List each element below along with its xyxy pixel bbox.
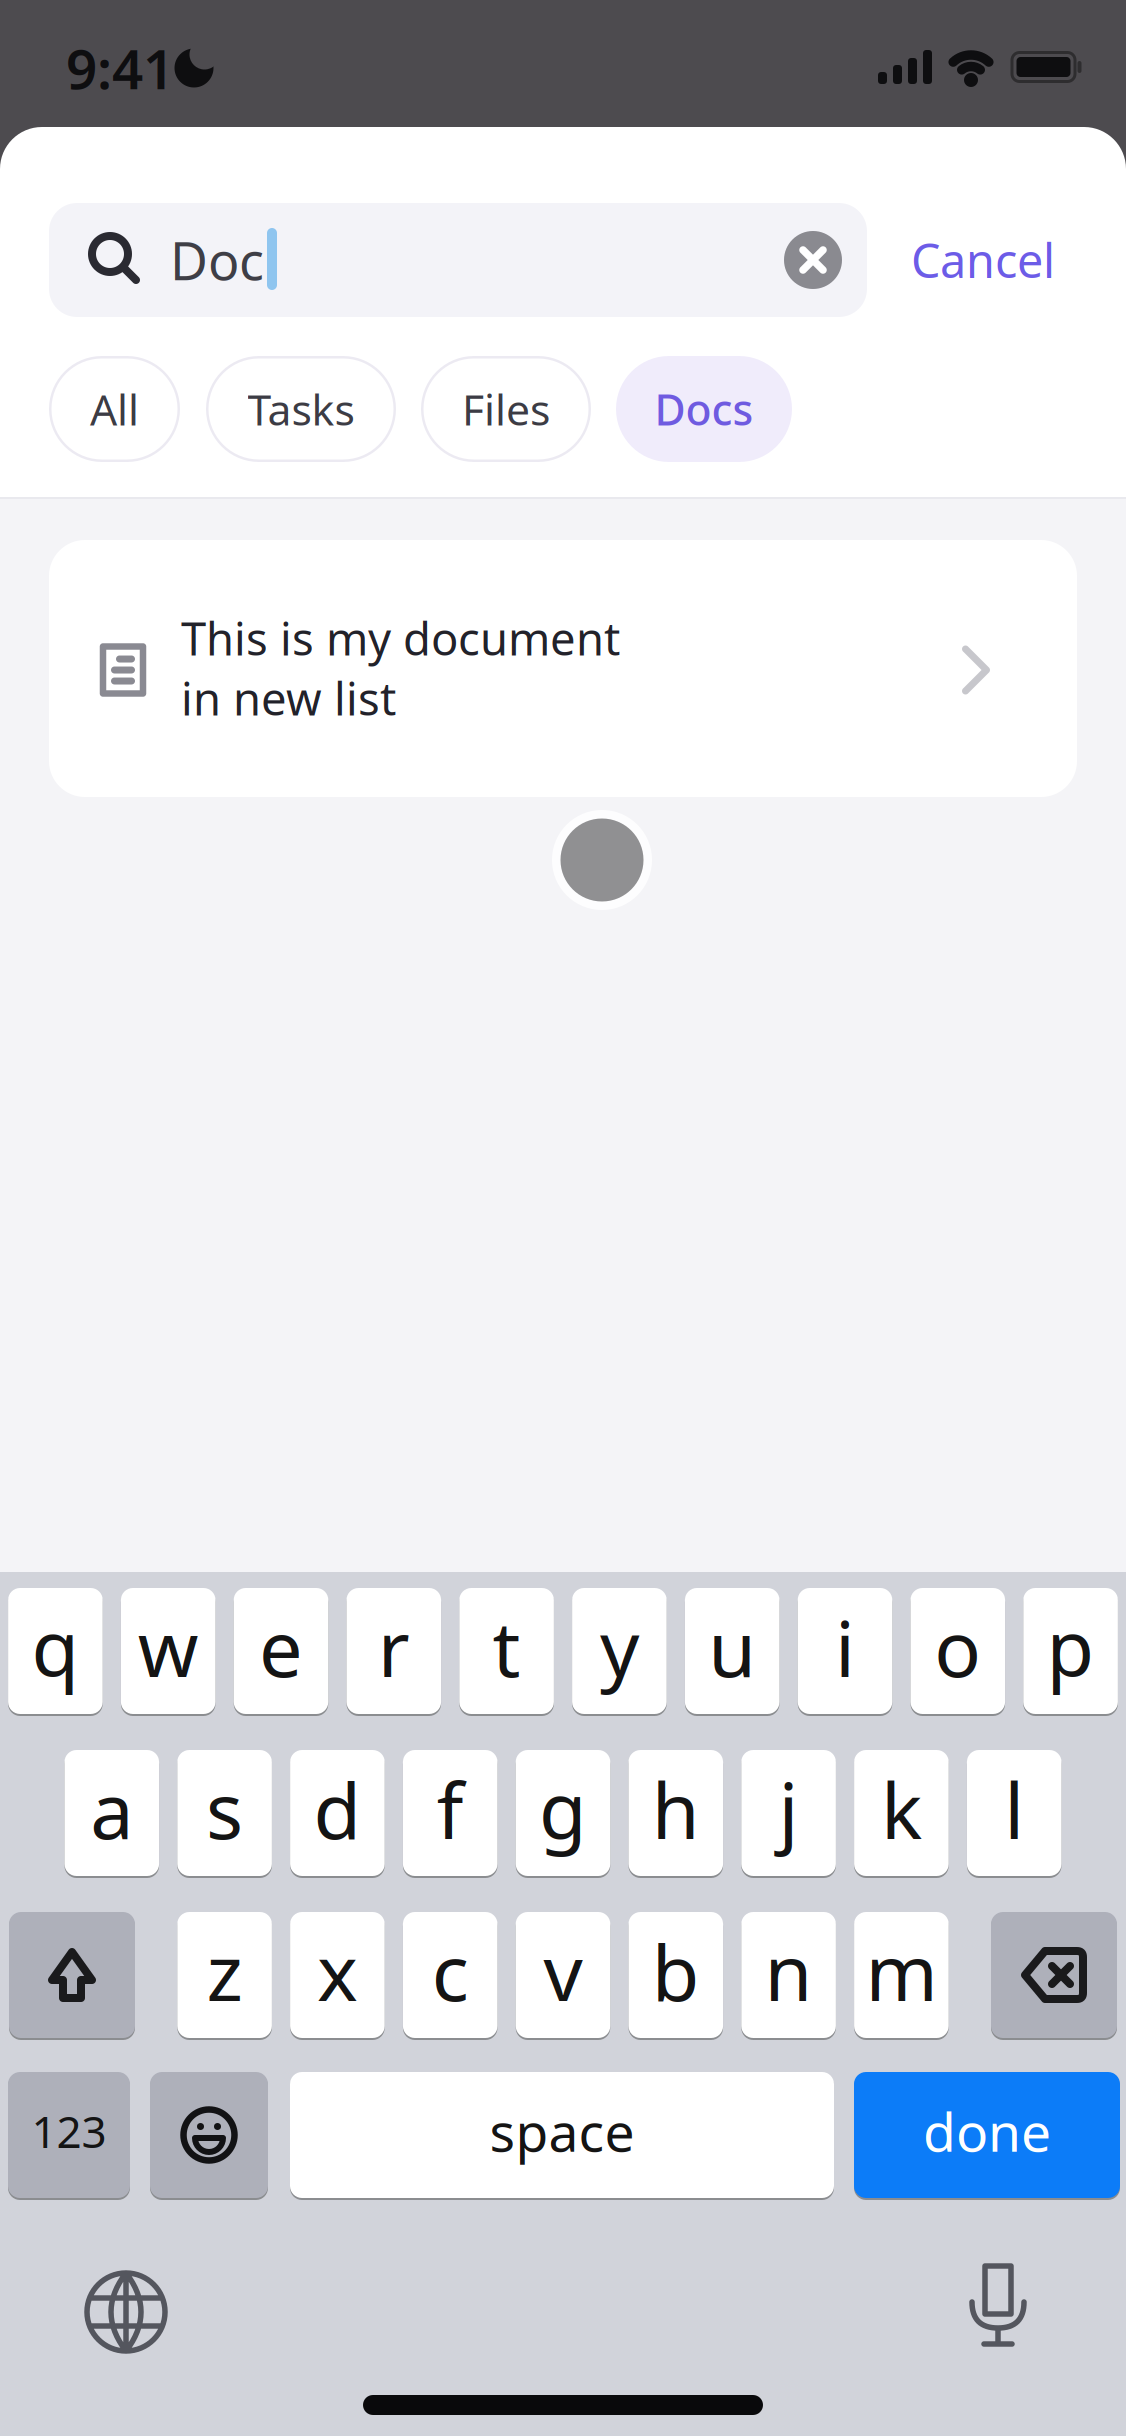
button[interactable]: m	[854, 1911, 949, 2039]
button[interactable]: x	[290, 1911, 385, 2039]
staticText: u	[708, 1596, 756, 1698]
staticText: n	[765, 1920, 813, 2022]
staticText: This is my document	[181, 608, 620, 668]
staticText: w	[138, 1596, 199, 1698]
button[interactable]: Emoji	[150, 2071, 268, 2199]
staticText: e	[259, 1596, 303, 1698]
staticText: k	[881, 1758, 922, 1860]
staticText: d	[313, 1758, 361, 1860]
button[interactable]: w	[121, 1587, 215, 1715]
staticText: l	[1004, 1758, 1024, 1860]
staticText: z	[207, 1920, 243, 2022]
staticText: 9:41	[66, 32, 174, 104]
staticText: m	[865, 1920, 937, 2022]
staticText: space	[489, 2096, 634, 2166]
button[interactable]: b	[628, 1911, 723, 2039]
button[interactable]: i	[798, 1587, 892, 1715]
staticText: x	[317, 1920, 358, 2022]
button[interactable]: 123	[8, 2071, 130, 2199]
staticText: b	[652, 1920, 700, 2022]
staticText: a	[90, 1758, 133, 1860]
staticText: All	[90, 381, 139, 437]
button[interactable]: All	[49, 356, 180, 462]
button[interactable]: e	[234, 1587, 328, 1715]
button[interactable]: Clear text	[784, 231, 842, 289]
button[interactable]: v	[516, 1911, 610, 2039]
staticText: 123	[31, 2102, 106, 2160]
button[interactable]: u	[685, 1587, 779, 1715]
button[interactable]: q	[8, 1587, 103, 1715]
button[interactable]: d	[290, 1749, 385, 1877]
staticText: y	[600, 1596, 639, 1698]
staticText: j	[779, 1758, 799, 1860]
button[interactable]: f	[403, 1749, 497, 1877]
button[interactable]: Cancel	[911, 229, 1055, 291]
staticText: Tasks	[247, 381, 354, 437]
staticText: q	[31, 1596, 79, 1698]
button[interactable]: c	[403, 1911, 497, 2039]
staticText: g	[539, 1758, 587, 1860]
button[interactable]: o	[910, 1587, 1005, 1715]
button[interactable]: g	[516, 1749, 610, 1877]
staticText: v	[543, 1920, 582, 2022]
button[interactable]: p	[1023, 1587, 1118, 1715]
button[interactable]: done	[854, 2071, 1120, 2199]
button[interactable]: z	[177, 1911, 272, 2039]
staticText: done	[923, 2096, 1051, 2166]
staticText: o	[934, 1596, 981, 1698]
button[interactable]: h	[628, 1749, 723, 1877]
button[interactable]: Shift	[9, 1911, 135, 2039]
staticText: in new list	[181, 668, 396, 728]
staticText: Doc	[170, 225, 264, 295]
button[interactable]: s	[177, 1749, 272, 1877]
button[interactable]: n	[741, 1911, 836, 2039]
button[interactable]: a	[64, 1749, 159, 1877]
button[interactable]: Docs	[616, 356, 792, 462]
staticText: Cancel	[911, 229, 1055, 291]
button[interactable]: j	[741, 1749, 836, 1877]
staticText: h	[652, 1758, 700, 1860]
staticText: f	[437, 1758, 464, 1860]
button[interactable]: Tasks	[206, 356, 396, 462]
staticText: Files	[462, 381, 550, 437]
button[interactable]: space	[290, 2071, 834, 2199]
staticText: Docs	[654, 381, 753, 437]
staticText: t	[493, 1596, 521, 1698]
staticText: p	[1047, 1596, 1095, 1698]
button[interactable]: y	[572, 1587, 667, 1715]
staticText: i	[835, 1596, 855, 1698]
staticText: r	[378, 1596, 410, 1698]
button[interactable]: Delete	[991, 1911, 1117, 2039]
staticText: c	[432, 1920, 469, 2022]
staticText: s	[206, 1758, 243, 1860]
button[interactable]: t	[459, 1587, 554, 1715]
button[interactable]: Files	[421, 356, 591, 462]
button[interactable]: Next keyboard	[84, 2270, 168, 2354]
button[interactable]: k	[854, 1749, 949, 1877]
button[interactable]: Dictate	[962, 2264, 1034, 2348]
button[interactable]: r	[346, 1587, 441, 1715]
button[interactable]: l	[967, 1749, 1061, 1877]
button[interactable]: This is my document	[49, 540, 1077, 797]
